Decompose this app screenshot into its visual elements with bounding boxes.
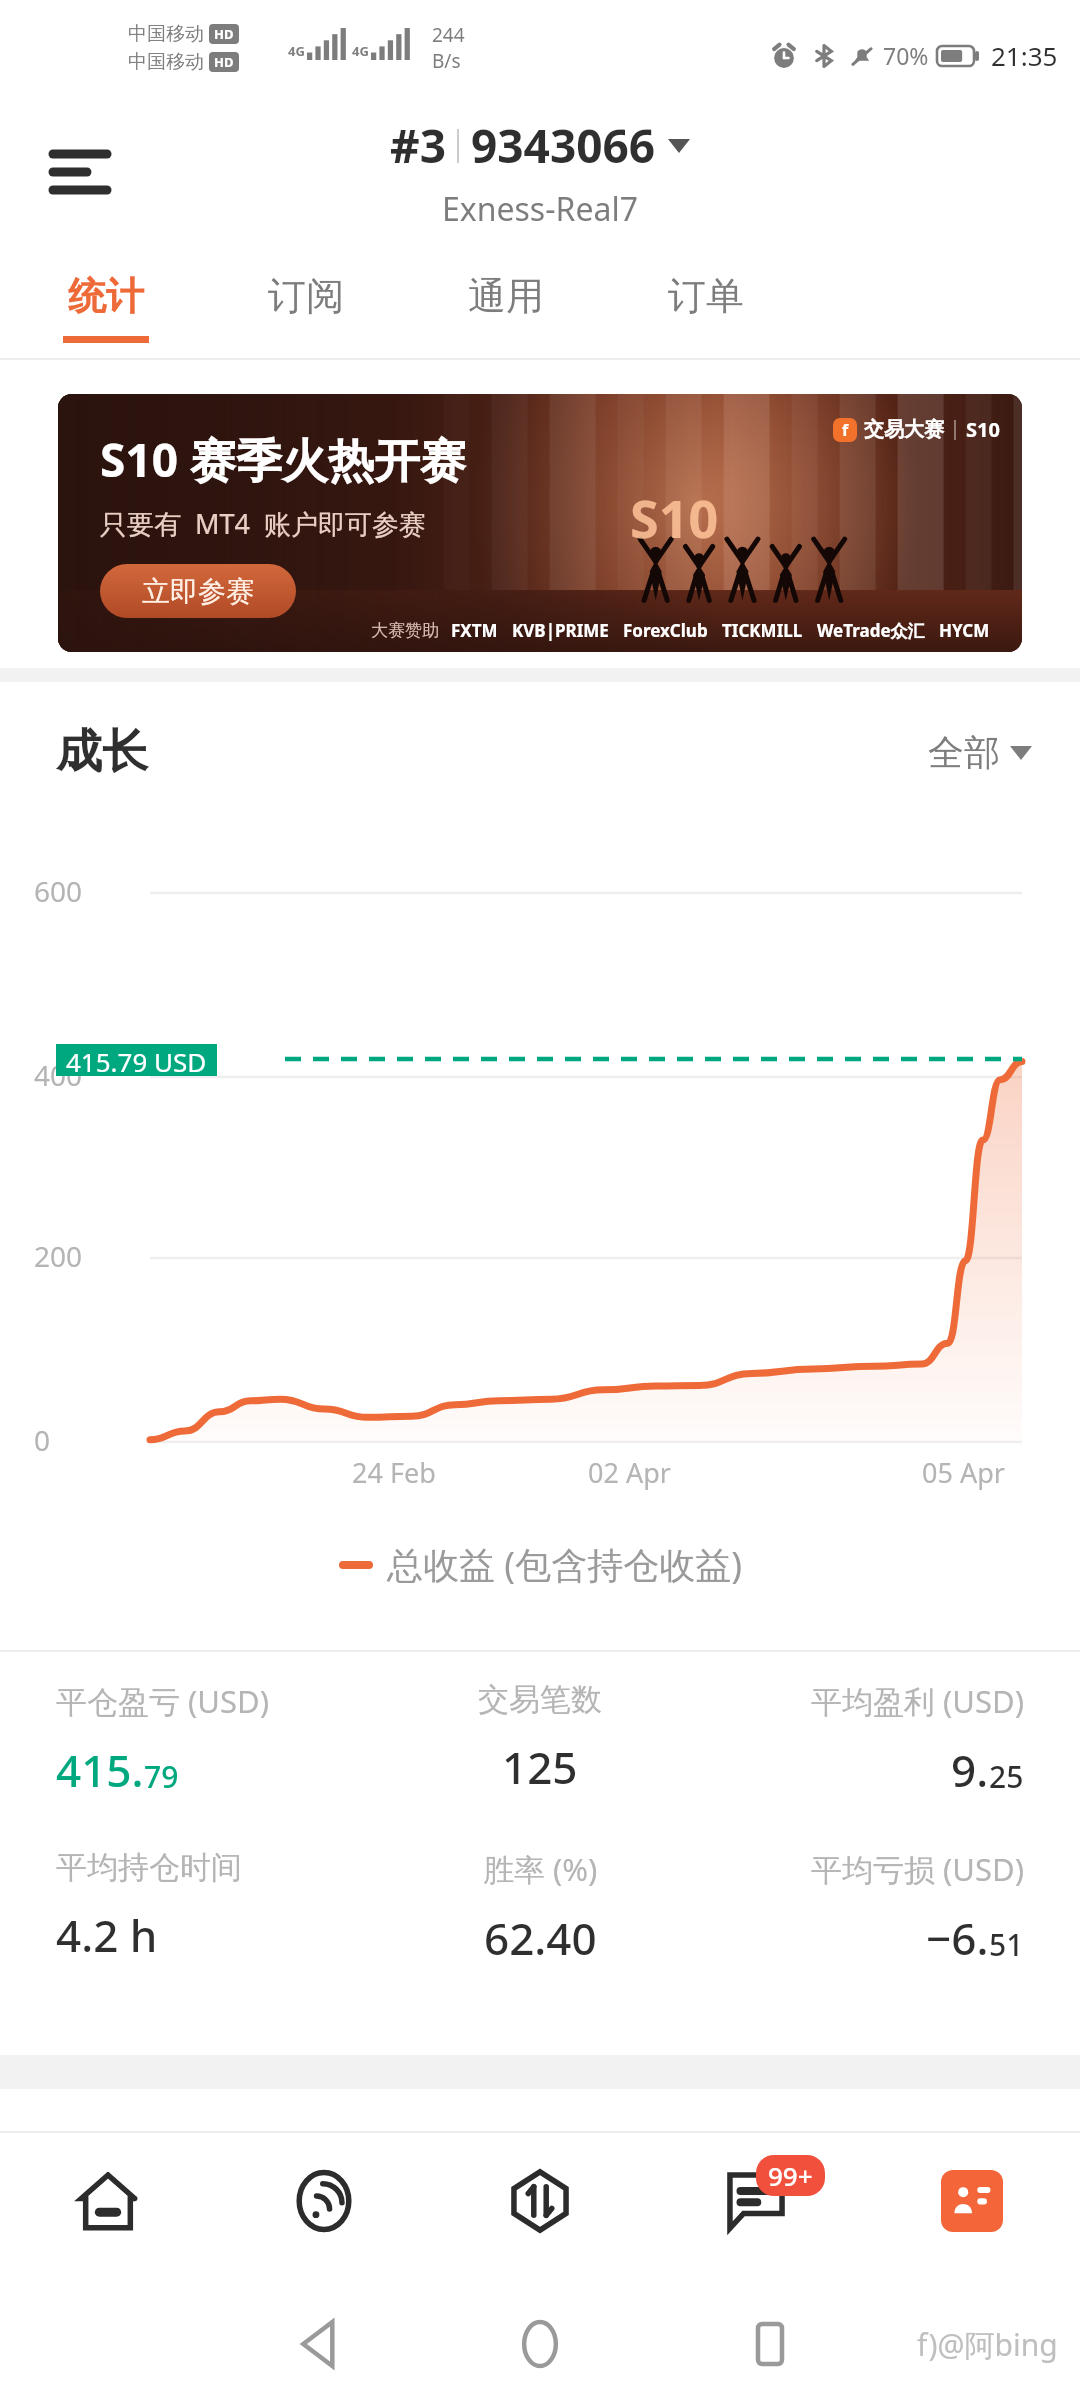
button[interactable]: Back xyxy=(270,2288,370,2400)
staticText: 600 xyxy=(34,872,83,910)
staticText: 79 xyxy=(144,1756,179,1797)
button[interactable]: 订单 xyxy=(622,255,790,360)
staticText: KVB|PRIME xyxy=(512,619,609,642)
staticText: 中国移动 xyxy=(128,50,204,74)
staticText: 交易大赛 xyxy=(864,417,944,442)
staticText: S10 赛季火热开赛 xyxy=(100,428,466,491)
staticText: 4G xyxy=(288,42,305,60)
staticText: 平仓盈亏 (USD) xyxy=(56,1680,269,1722)
staticText: B/s xyxy=(432,48,461,74)
staticText: 平均盈利 (USD) xyxy=(811,1680,1024,1722)
button[interactable]: Trade xyxy=(490,2151,590,2251)
staticText: 415. xyxy=(56,1740,144,1800)
staticText: 4.2 h xyxy=(56,1905,158,1965)
staticText: 通用 xyxy=(468,272,544,320)
staticText: 大赛赞助 xyxy=(371,620,439,641)
staticText: 200 xyxy=(34,1237,83,1275)
staticText: 0 xyxy=(34,1421,51,1459)
staticText: 05 Apr xyxy=(922,1454,1005,1491)
staticText: 02 Apr xyxy=(588,1454,671,1491)
staticText: 400 xyxy=(34,1056,83,1094)
staticText: f xyxy=(842,419,849,441)
staticText: 平均持仓时间 xyxy=(56,1848,242,1887)
staticText: 62.40 xyxy=(484,1908,597,1968)
staticText: WeTrade众汇 xyxy=(817,619,925,642)
staticText: −6. xyxy=(926,1908,989,1968)
staticText: 24 Feb xyxy=(352,1454,436,1491)
staticText: TICKMILL xyxy=(722,619,803,642)
button[interactable]: 立即参赛 xyxy=(100,564,296,618)
button[interactable]: 订阅 xyxy=(222,255,390,360)
staticText: S10 xyxy=(630,482,719,553)
button[interactable]: Recents xyxy=(720,2288,820,2400)
staticText: 99+ xyxy=(768,2158,813,2193)
staticText: 415.79 USD xyxy=(66,1044,207,1076)
staticText: HD xyxy=(214,25,234,43)
staticText: f)@阿bing xyxy=(917,2324,1058,2365)
staticText: 交易笔数 xyxy=(478,1680,602,1719)
staticText: 51 xyxy=(989,1924,1024,1965)
button[interactable]: S10 xyxy=(58,394,1022,652)
staticText: 70% xyxy=(883,40,929,71)
staticText: Exness-Real7 xyxy=(442,187,638,231)
button[interactable]: Menu xyxy=(40,132,120,212)
button[interactable]: Profile xyxy=(922,2151,1022,2251)
staticText: HYCM xyxy=(939,619,990,642)
staticText: 订单 xyxy=(668,272,744,320)
staticText: 9. xyxy=(951,1740,989,1800)
button[interactable]: Messages xyxy=(706,2151,806,2251)
staticText: 订阅 xyxy=(268,272,344,320)
staticText: 平均亏损 (USD) xyxy=(811,1848,1024,1890)
staticText: #3 xyxy=(390,114,447,177)
staticText: 立即参赛 xyxy=(142,574,254,609)
button[interactable]: Home xyxy=(490,2288,590,2400)
staticText: 统计 xyxy=(68,272,144,320)
button[interactable]: Home xyxy=(58,2151,158,2251)
staticText: 244 xyxy=(432,22,465,48)
staticText: S10 xyxy=(966,416,1000,443)
staticText: 4G xyxy=(352,42,369,60)
button[interactable]: 全部 xyxy=(928,730,1032,775)
staticText: HD xyxy=(214,53,234,71)
button[interactable]: #3 xyxy=(390,114,690,177)
staticText: 只要有 MT4 账户即可参赛 xyxy=(100,505,427,542)
staticText: 全部 xyxy=(928,730,1000,775)
staticText: 9343066 xyxy=(471,114,656,177)
staticText: 中国移动 xyxy=(128,22,204,46)
button[interactable]: Signals xyxy=(274,2151,374,2251)
staticText: 胜率 (%) xyxy=(483,1848,598,1890)
staticText: 21:35 xyxy=(991,38,1058,73)
staticText: ForexClub xyxy=(623,619,708,642)
staticText: 总收益 (包含持仓收益) xyxy=(387,1540,742,1589)
staticText: 成长 xyxy=(56,723,148,781)
staticText: 125 xyxy=(502,1737,578,1797)
staticText: FXTM xyxy=(451,619,498,642)
button[interactable]: 通用 xyxy=(422,255,590,360)
staticText: 25 xyxy=(989,1756,1024,1797)
button[interactable]: 统计 xyxy=(22,255,190,360)
